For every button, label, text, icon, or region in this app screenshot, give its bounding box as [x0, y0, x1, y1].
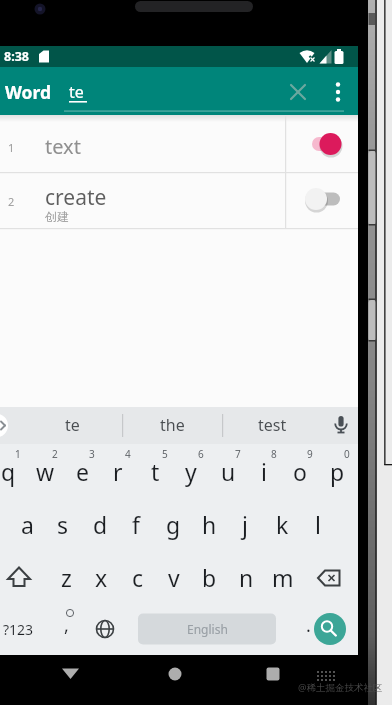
button[interactable]: te	[12, 407, 132, 443]
staticText: 9	[307, 447, 313, 461]
staticText: te	[69, 81, 84, 103]
staticText: English	[187, 621, 228, 637]
staticText: 6	[198, 447, 204, 461]
button[interactable]: o	[283, 453, 317, 489]
staticText: create	[45, 183, 107, 212]
staticText: m	[272, 562, 294, 593]
button[interactable]: n	[229, 559, 263, 595]
staticText: Word	[5, 80, 52, 104]
staticText: r	[113, 456, 123, 487]
button[interactable]: ?123	[0, 611, 48, 647]
staticText: p	[330, 456, 345, 487]
staticText: y	[185, 456, 197, 487]
staticText: b	[202, 562, 217, 593]
staticText: 3	[89, 447, 95, 461]
staticText: l	[315, 509, 321, 540]
button[interactable]	[296, 123, 351, 165]
button[interactable]: x	[84, 559, 118, 595]
staticText: 8	[271, 447, 277, 461]
button[interactable]: j	[228, 506, 262, 542]
staticText: q	[1, 456, 16, 487]
button[interactable]: d	[83, 506, 117, 542]
button[interactable]: test	[212, 407, 332, 443]
staticText: n	[239, 562, 254, 593]
button[interactable]	[282, 76, 314, 108]
staticText: o	[293, 456, 307, 487]
staticText: e	[76, 456, 89, 487]
button[interactable]	[88, 604, 121, 654]
button[interactable]	[324, 76, 354, 108]
button[interactable]: q	[0, 453, 25, 489]
staticText: 7	[235, 447, 241, 461]
staticText: 8:38	[4, 48, 29, 65]
staticText: 4	[125, 447, 131, 461]
staticText: t	[151, 456, 160, 487]
staticText: 5	[162, 447, 168, 461]
button[interactable]: l	[301, 506, 335, 542]
button[interactable]: b	[192, 559, 226, 595]
staticText: @稀土掘金技术社区	[298, 681, 383, 694]
staticText: text	[45, 133, 81, 160]
staticText: 创建	[45, 209, 69, 224]
staticText: h	[202, 509, 217, 540]
staticText: the	[160, 414, 185, 436]
button[interactable]: i	[247, 453, 281, 489]
staticText: ?123	[3, 620, 34, 639]
staticText: 1	[15, 447, 21, 461]
staticText: f	[132, 509, 140, 540]
button[interactable]	[310, 551, 346, 603]
button[interactable]	[322, 409, 354, 442]
button[interactable]: g	[156, 506, 190, 542]
button[interactable]: t	[138, 453, 172, 489]
staticText: z	[61, 562, 72, 593]
button[interactable]: the	[112, 407, 232, 443]
staticText: ,	[64, 613, 69, 638]
button[interactable]	[55, 658, 87, 690]
staticText: g	[166, 509, 181, 540]
staticText: i	[261, 456, 267, 487]
button[interactable]	[257, 658, 289, 690]
button[interactable]	[296, 178, 351, 220]
button[interactable]: .	[298, 607, 318, 643]
button[interactable]: k	[265, 506, 299, 542]
button[interactable]: z	[49, 559, 83, 595]
staticText: 1	[8, 140, 15, 155]
button[interactable]: ,	[56, 607, 76, 643]
staticText: d	[93, 509, 108, 540]
button[interactable]: c	[121, 559, 155, 595]
button[interactable]: a	[10, 506, 44, 542]
button[interactable]	[0, 116, 285, 172]
button[interactable]: w	[28, 453, 62, 489]
button[interactable]: y	[174, 453, 208, 489]
button[interactable]: s	[46, 506, 80, 542]
button[interactable]: h	[192, 506, 226, 542]
button[interactable]: English	[137, 611, 277, 647]
staticText: w	[36, 456, 55, 487]
staticText: 2	[52, 447, 58, 461]
button[interactable]: e	[65, 453, 99, 489]
button[interactable]: f	[119, 506, 153, 542]
button[interactable]	[0, 172, 285, 228]
staticText: a	[21, 509, 34, 540]
staticText: .	[306, 613, 311, 638]
button[interactable]: u	[211, 453, 245, 489]
staticText: u	[221, 456, 236, 487]
button[interactable]: p	[320, 453, 354, 489]
staticText: j	[242, 509, 248, 540]
staticText: c	[132, 562, 144, 593]
staticText: s	[57, 509, 69, 540]
button[interactable]	[0, 551, 30, 603]
staticText: x	[95, 562, 108, 593]
staticText: v	[168, 562, 180, 593]
button[interactable]: v	[157, 559, 191, 595]
button[interactable]	[314, 613, 346, 645]
staticText: k	[276, 509, 289, 540]
button[interactable]: r	[101, 453, 135, 489]
staticText: 0	[344, 447, 350, 461]
staticText: 2	[8, 194, 15, 209]
staticText: test	[258, 414, 287, 436]
button[interactable]	[159, 658, 191, 690]
staticText: te	[65, 414, 80, 436]
button[interactable]: m	[266, 559, 300, 595]
